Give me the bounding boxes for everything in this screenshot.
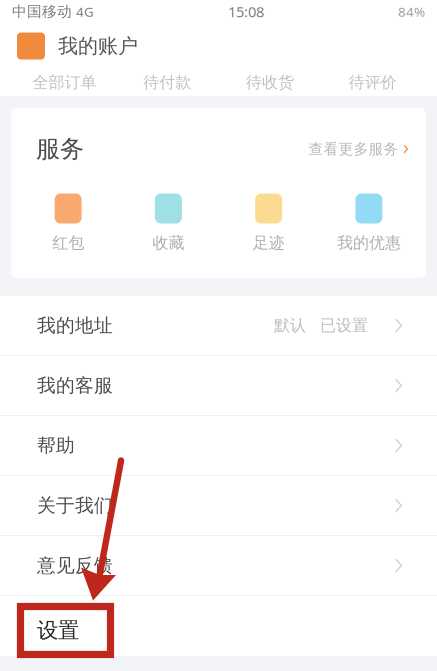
- button[interactable]: 帮助: [0, 416, 437, 476]
- staticText: 关于我们: [37, 494, 113, 517]
- button[interactable]: 待评价: [321, 67, 424, 97]
- button[interactable]: 设置: [0, 596, 437, 656]
- button[interactable]: 关于我们: [0, 476, 437, 536]
- staticText: 默认: [274, 316, 306, 335]
- button[interactable]: 待付款: [116, 67, 219, 97]
- button[interactable]: 收藏: [118, 193, 218, 250]
- staticText: 足迹: [253, 233, 285, 253]
- button[interactable]: 我的客服: [0, 356, 437, 416]
- button[interactable]: 红包: [18, 193, 118, 250]
- staticText: 15:08: [228, 2, 264, 21]
- staticText: 我的地址: [37, 314, 113, 337]
- button[interactable]: 全部订单: [13, 67, 116, 97]
- staticText: 意见反馈: [37, 554, 113, 577]
- staticText: 查看更多服务: [308, 140, 398, 158]
- staticText: 我的客服: [37, 374, 113, 397]
- staticText: 中国移动: [12, 2, 72, 20]
- staticText: 待评价: [349, 73, 397, 92]
- staticText: 服务: [36, 134, 84, 164]
- button[interactable]: 意见反馈: [0, 536, 437, 596]
- button[interactable]: 待收货: [218, 67, 321, 97]
- staticText: 设置: [37, 617, 79, 644]
- staticText: 已设置: [320, 316, 368, 335]
- button[interactable]: 我的地址: [0, 296, 437, 356]
- button[interactable]: 我的优惠: [319, 193, 419, 250]
- button[interactable]: 足迹: [218, 193, 319, 250]
- staticText: 4G: [76, 3, 94, 20]
- staticText: 全部订单: [32, 73, 96, 92]
- staticText: 收藏: [152, 233, 184, 253]
- button[interactable]: 我的账户: [0, 24, 437, 67]
- staticText: 待收货: [246, 73, 294, 92]
- staticText: 红包: [52, 233, 84, 253]
- staticText: 我的优惠: [337, 233, 401, 253]
- staticText: 待付款: [143, 73, 191, 92]
- staticText: 我的账户: [58, 34, 138, 58]
- staticText: 84%: [398, 3, 425, 20]
- staticText: 帮助: [37, 434, 75, 457]
- button[interactable]: 查看更多服务: [308, 140, 408, 158]
